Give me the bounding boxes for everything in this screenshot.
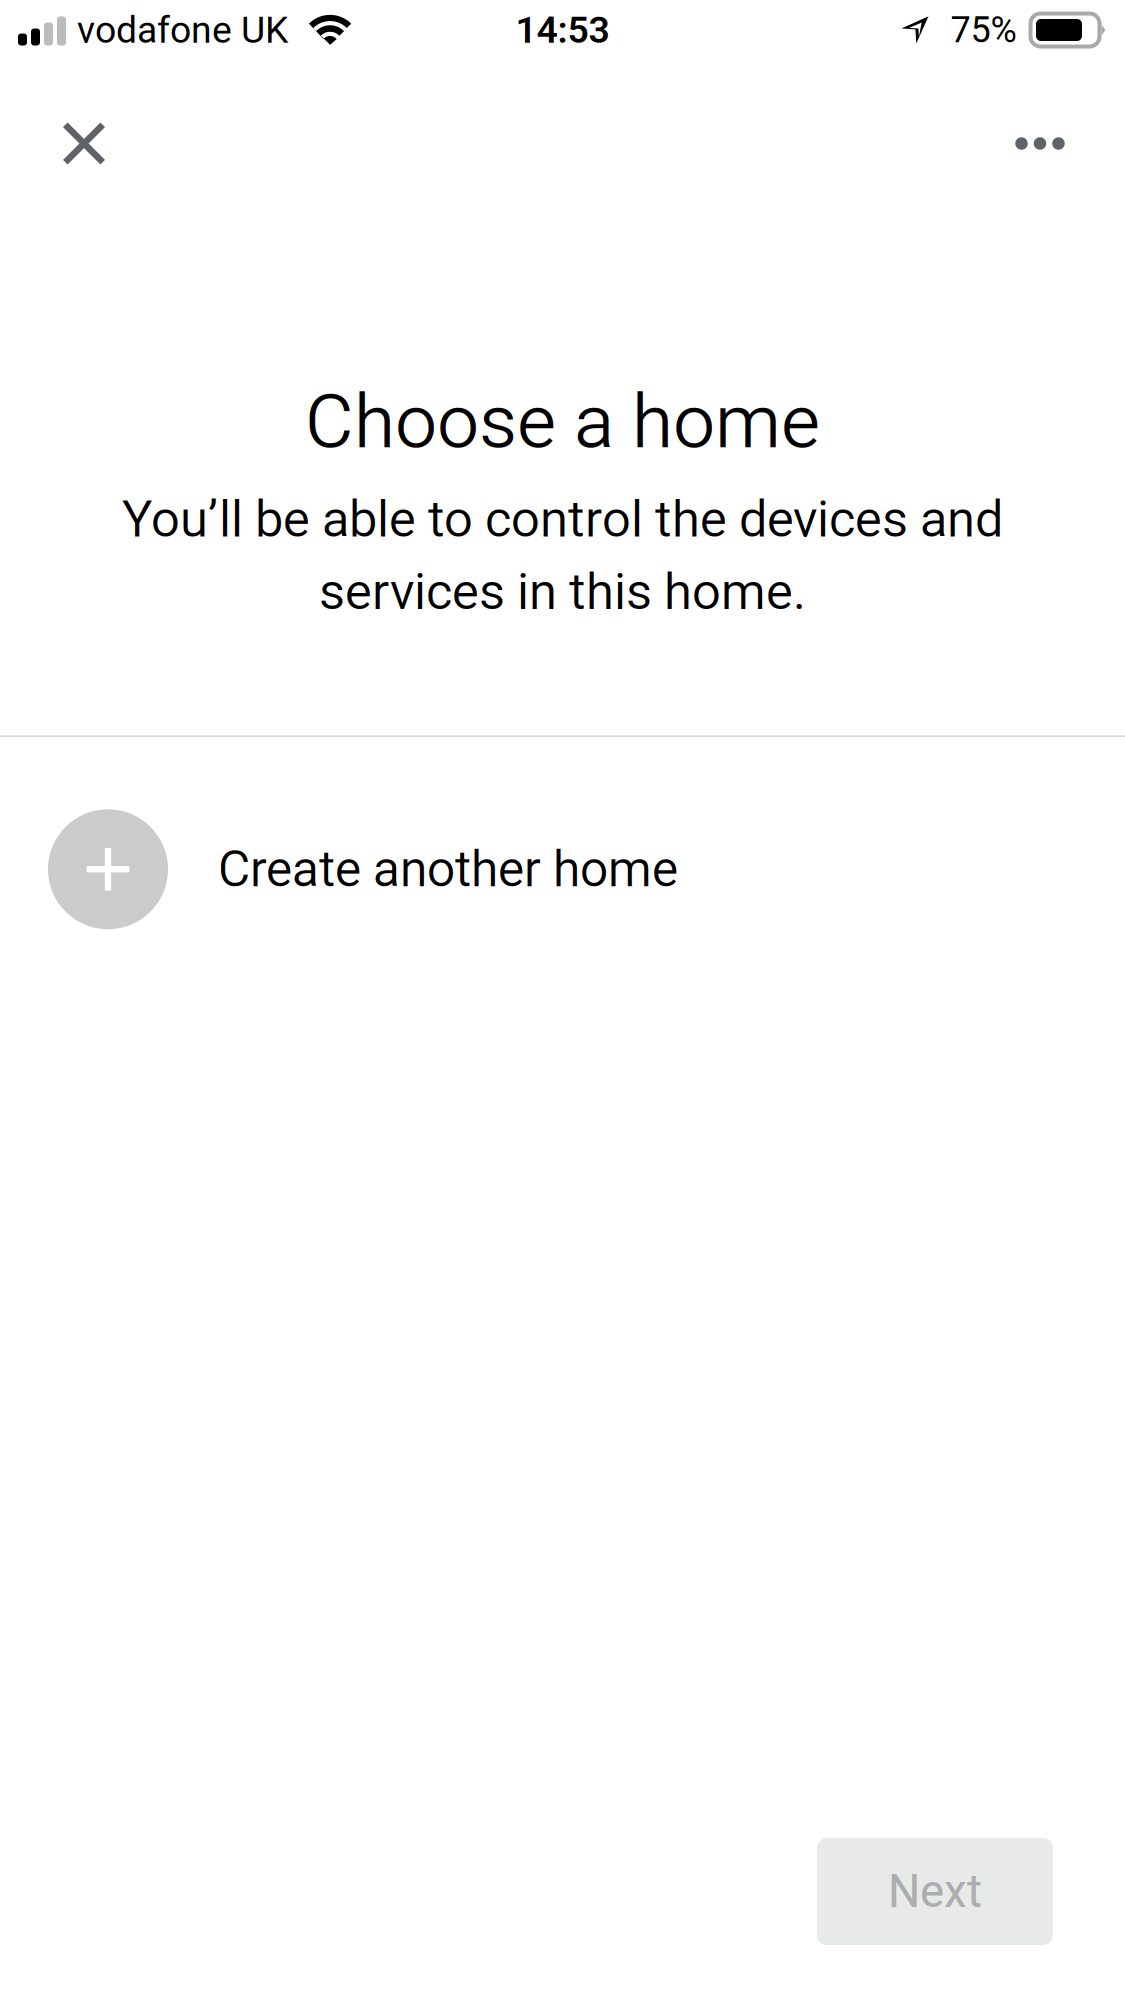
- button[interactable]: Close: [24, 83, 144, 203]
- button[interactable]: Create another home: [0, 737, 1125, 1001]
- button[interactable]: More options: [980, 83, 1100, 203]
- button[interactable]: Next: [817, 1838, 1053, 1945]
- staticText: Next: [888, 1865, 982, 1918]
- staticText: services in this home.: [319, 562, 806, 621]
- staticText: Create another home: [218, 840, 678, 898]
- staticText: 75%: [950, 9, 1016, 51]
- staticText: vodafone UK: [77, 8, 288, 52]
- staticText: You’ll be able to control the devices an…: [122, 489, 1003, 549]
- staticText: 14:53: [515, 8, 609, 52]
- staticText: Choose a home: [305, 378, 820, 465]
